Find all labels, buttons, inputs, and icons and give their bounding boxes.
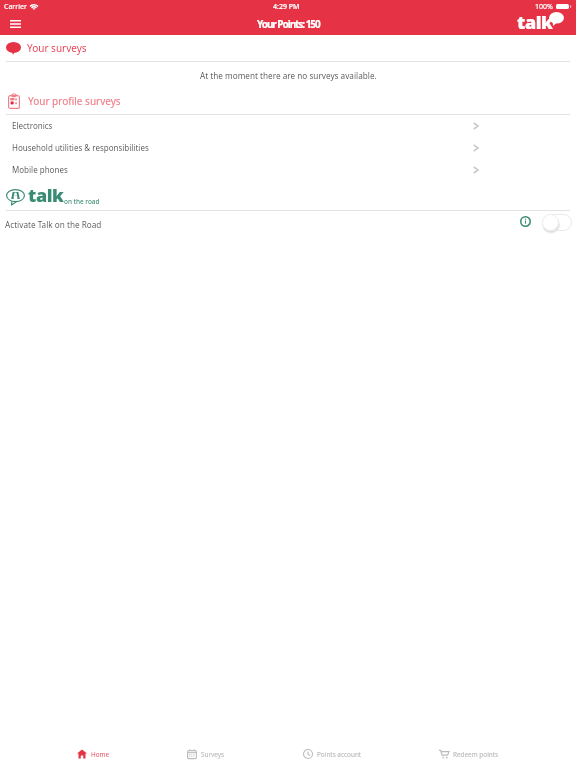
staticText: Electronics: [12, 120, 53, 131]
staticText: Mobile phones: [12, 164, 68, 175]
staticText: 4:29 PM: [273, 2, 300, 12]
staticText: Your profile surveys: [28, 94, 121, 108]
staticText: Surveys: [201, 750, 225, 759]
button[interactable]: Electronics: [0, 115, 576, 137]
staticText: 100%: [535, 2, 553, 12]
staticText: talk: [517, 10, 553, 35]
staticText: on the road: [64, 197, 100, 206]
button[interactable]: Redeem points: [439, 742, 499, 766]
staticText: Redeem points: [453, 750, 499, 759]
staticText: Carrier: [4, 2, 27, 12]
staticText: talk: [28, 183, 64, 208]
button[interactable]: More information about Talk on the Road: [518, 214, 533, 229]
staticText: Your Points: 150: [257, 17, 320, 31]
button[interactable]: Open navigation menu: [0, 13, 30, 35]
button[interactable]: Surveys: [187, 742, 225, 766]
staticText: Household utilities & responsibilities: [12, 142, 149, 153]
button[interactable]: Home: [77, 742, 110, 766]
staticText: Your surveys: [27, 41, 87, 55]
staticText: Activate Talk on the Road: [5, 219, 102, 230]
button[interactable]: Mobile phones: [0, 159, 576, 181]
button[interactable]: Household utilities & responsibilities: [0, 137, 576, 159]
staticText: Home: [91, 750, 110, 759]
button[interactable]: Activate Talk on the Road: [542, 214, 572, 231]
button[interactable]: Points account: [303, 742, 362, 766]
staticText: Points account: [317, 750, 362, 759]
staticText: At the moment there are no surveys avail…: [200, 70, 377, 81]
